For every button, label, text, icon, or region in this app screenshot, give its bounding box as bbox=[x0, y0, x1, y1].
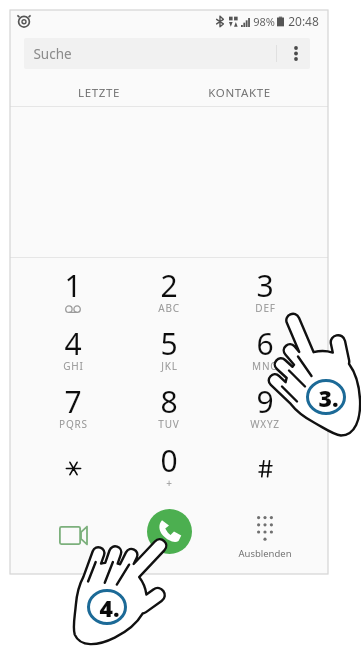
button[interactable]: LETZTE bbox=[28, 82, 169, 104]
button[interactable]: 6 bbox=[217, 315, 313, 373]
staticText: 20:48 bbox=[288, 13, 319, 29]
staticText: PQRS bbox=[59, 417, 88, 431]
staticText: 1 bbox=[64, 265, 82, 306]
staticText: MNO bbox=[252, 359, 279, 373]
staticText: 0 bbox=[160, 440, 178, 481]
button[interactable]: 9 bbox=[217, 373, 313, 432]
staticText: 3. bbox=[318, 382, 339, 413]
button[interactable]: 4 bbox=[25, 315, 121, 373]
staticText: JKL bbox=[161, 359, 178, 373]
staticText: 7 bbox=[64, 381, 82, 422]
staticText: 3 bbox=[256, 265, 274, 306]
staticText: 4 bbox=[64, 323, 82, 364]
button[interactable]: Call bbox=[147, 509, 192, 554]
staticText: 9 bbox=[256, 381, 274, 422]
staticText: 8 bbox=[160, 381, 178, 422]
staticText: Suche bbox=[33, 45, 72, 63]
button[interactable]: 7 bbox=[25, 373, 121, 432]
button[interactable]: 8 bbox=[121, 373, 217, 432]
staticText: KONTAKTE bbox=[208, 85, 271, 101]
button[interactable]: 2 bbox=[121, 257, 217, 315]
button[interactable]: Ausblenden bbox=[217, 491, 313, 574]
staticText: 4. bbox=[99, 592, 120, 623]
staticText: TUV bbox=[158, 417, 180, 431]
button[interactable]: KONTAKTE bbox=[169, 82, 310, 104]
staticText: DEF bbox=[255, 301, 276, 315]
button[interactable]: 3 bbox=[217, 257, 313, 315]
staticText: WXYZ bbox=[250, 417, 280, 431]
staticText: LETZTE bbox=[78, 85, 120, 101]
staticText: 2 bbox=[160, 265, 178, 306]
button[interactable] bbox=[217, 432, 313, 491]
button[interactable]: More options bbox=[282, 38, 310, 69]
button[interactable]: Video call bbox=[25, 491, 121, 574]
staticText: ABC bbox=[158, 301, 180, 315]
button[interactable]: Suche bbox=[24, 38, 310, 69]
staticText: GHI bbox=[63, 359, 84, 373]
staticText: + bbox=[166, 476, 173, 490]
staticText: 98% bbox=[253, 14, 275, 29]
staticText: Ausblenden bbox=[238, 547, 292, 560]
button[interactable]: 0 bbox=[121, 432, 217, 491]
button[interactable]: 1 bbox=[25, 257, 121, 315]
button[interactable] bbox=[25, 432, 121, 491]
button[interactable]: 5 bbox=[121, 315, 217, 373]
staticText: 5 bbox=[160, 323, 178, 364]
staticText: 6 bbox=[256, 323, 274, 364]
